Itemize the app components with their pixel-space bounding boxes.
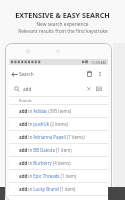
button[interactable]: add in BB Dakota (1 item) [9, 144, 108, 156]
button[interactable]: add in Epic Threads (1 item) [9, 170, 108, 182]
button[interactable]: Back [10, 70, 18, 78]
button[interactable]: add in pushUk (2 items) [9, 118, 108, 130]
button[interactable]: Delete [85, 69, 94, 78]
staticText: New search experience [36, 21, 89, 28]
staticText: add in Lucky Brand (1 item) [19, 186, 76, 192]
button[interactable]: More options [96, 70, 103, 77]
staticText: add in BB Dakota (1 item) [19, 147, 72, 153]
staticText: add in pushUk (2 items) [19, 121, 68, 127]
button[interactable]: add in Lucky Brand (1 item) [9, 183, 108, 195]
staticText: add in Adidas (395 items) [19, 108, 72, 114]
staticText: add in Adrianna Papell (7 items) [19, 134, 85, 140]
button[interactable]: add in Adidas (395 items) [9, 105, 108, 117]
staticText: Relevant results from the first keystrok… [18, 28, 108, 35]
staticText: 11:39 AM [91, 60, 106, 65]
button[interactable]: Search [13, 85, 21, 93]
staticText: Search [19, 71, 34, 77]
button[interactable]: Clear [85, 85, 93, 93]
button[interactable]: add in Adrianna Papell (7 items) [9, 131, 108, 143]
staticText: add [23, 86, 32, 92]
staticText: add in Burberry (4 items) [19, 160, 71, 166]
button[interactable]: Scan barcode [95, 85, 103, 93]
staticText: EXTENSIVE & EASY SEARCH [15, 10, 110, 20]
button[interactable]: add in Burberry (4 items) [9, 157, 108, 169]
staticText: Brands [19, 98, 32, 103]
staticText: add in Epic Threads (1 item) [19, 173, 77, 179]
